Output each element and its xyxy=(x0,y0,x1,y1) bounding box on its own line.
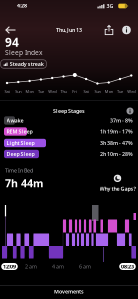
staticText: Awake xyxy=(6,117,23,124)
staticText: Sat xyxy=(4,89,9,94)
staticText: Thu, Jun 13 xyxy=(56,26,82,34)
staticText: Sun xyxy=(15,89,21,94)
staticText: Deep Sleep xyxy=(6,150,34,158)
button[interactable]: Why the Gaps? xyxy=(97,173,137,193)
staticText: Sleep Index xyxy=(5,48,43,57)
button[interactable]: Share xyxy=(103,24,115,36)
staticText: Movements xyxy=(54,288,84,295)
staticText: Wed xyxy=(48,89,56,94)
staticText: 6 am xyxy=(79,263,91,270)
button[interactable]: About sleep stages xyxy=(125,106,135,116)
button[interactable]: Back xyxy=(2,23,18,37)
staticText: Sat xyxy=(84,89,89,94)
staticText: 08:23 xyxy=(121,263,134,270)
staticText: Wed xyxy=(127,89,135,94)
staticText: Thu xyxy=(60,89,66,94)
staticText: REM Sleep xyxy=(6,128,32,135)
staticText: 1h 19m - 17% xyxy=(100,128,133,135)
staticText: Time In Bed xyxy=(5,167,33,174)
staticText: Sun xyxy=(94,89,100,94)
staticText: Tue xyxy=(117,89,123,94)
staticText: Fri xyxy=(72,89,77,94)
staticText: Why the Gaps? xyxy=(99,185,135,192)
staticText: 3h 38m - 47% xyxy=(100,139,133,147)
staticText: 4:28 xyxy=(17,2,27,9)
staticText: 7h 44m xyxy=(5,176,43,190)
staticText: Light Sleep xyxy=(6,139,34,147)
staticText: Steady streak xyxy=(10,60,44,68)
staticText: 2 am xyxy=(25,263,37,270)
button[interactable]: Info xyxy=(121,24,132,35)
staticText: 4 am xyxy=(52,263,64,270)
staticText: 2h 10m - 28% xyxy=(100,150,133,158)
staticText: 94 xyxy=(5,34,19,50)
staticText: Tue xyxy=(38,89,44,94)
staticText: 12:09 xyxy=(3,263,16,270)
staticText: 3G xyxy=(106,2,113,10)
staticText: Sleep Stages xyxy=(53,107,85,115)
staticText: Mon xyxy=(105,89,113,94)
staticText: Mon xyxy=(26,89,34,94)
staticText: 37m - 8% xyxy=(110,117,133,124)
